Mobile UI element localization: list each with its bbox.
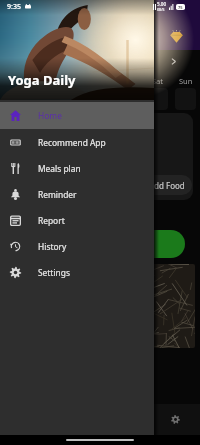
staticText: 75 — [178, 5, 183, 10]
staticText: Meals plan — [38, 163, 81, 174]
staticText: Fri — [124, 76, 133, 86]
button[interactable]: History — [0, 233, 154, 259]
button[interactable]: Reminder — [0, 181, 154, 207]
button[interactable]: Premium — [170, 30, 183, 43]
button[interactable]: Tue — [33, 76, 54, 110]
staticText: Sat — [152, 76, 164, 86]
button[interactable]: Wed — [61, 76, 82, 110]
staticText: Mon — [7, 76, 23, 86]
button[interactable]: Sun — [175, 76, 196, 110]
staticText: Reminder — [38, 189, 77, 200]
staticText: Yoga Daily — [8, 71, 76, 89]
button[interactable] — [24, 230, 185, 258]
staticText: Tue — [37, 76, 50, 86]
staticText: Sun — [179, 76, 193, 86]
staticText: Wed — [64, 76, 80, 86]
staticText: Home — [38, 110, 62, 121]
staticText: Add Food — [149, 180, 185, 191]
button[interactable]: Settings — [150, 404, 200, 435]
staticText: 5.00 — [157, 1, 167, 7]
staticText: KB/S — [157, 7, 165, 12]
button[interactable]: Next week — [169, 57, 178, 66]
staticText: Recommend App — [38, 137, 106, 148]
staticText: Settings — [38, 267, 70, 278]
button[interactable]: Fri — [118, 76, 139, 110]
staticText: Thu — [94, 76, 108, 86]
button[interactable]: Thu — [90, 76, 111, 110]
button[interactable]: Mon — [4, 76, 25, 110]
button[interactable]: Recommend App — [0, 129, 154, 155]
staticText: History — [38, 241, 67, 252]
button[interactable]: Add Food — [142, 175, 192, 195]
button[interactable]: Sat — [147, 76, 168, 110]
button[interactable]: Home — [0, 102, 154, 129]
button[interactable]: Meals plan — [0, 155, 154, 181]
button[interactable]: Report — [0, 207, 154, 233]
staticText: 9:35 — [7, 2, 21, 12]
staticText: Report — [38, 215, 65, 226]
button[interactable]: Settings — [0, 259, 154, 285]
